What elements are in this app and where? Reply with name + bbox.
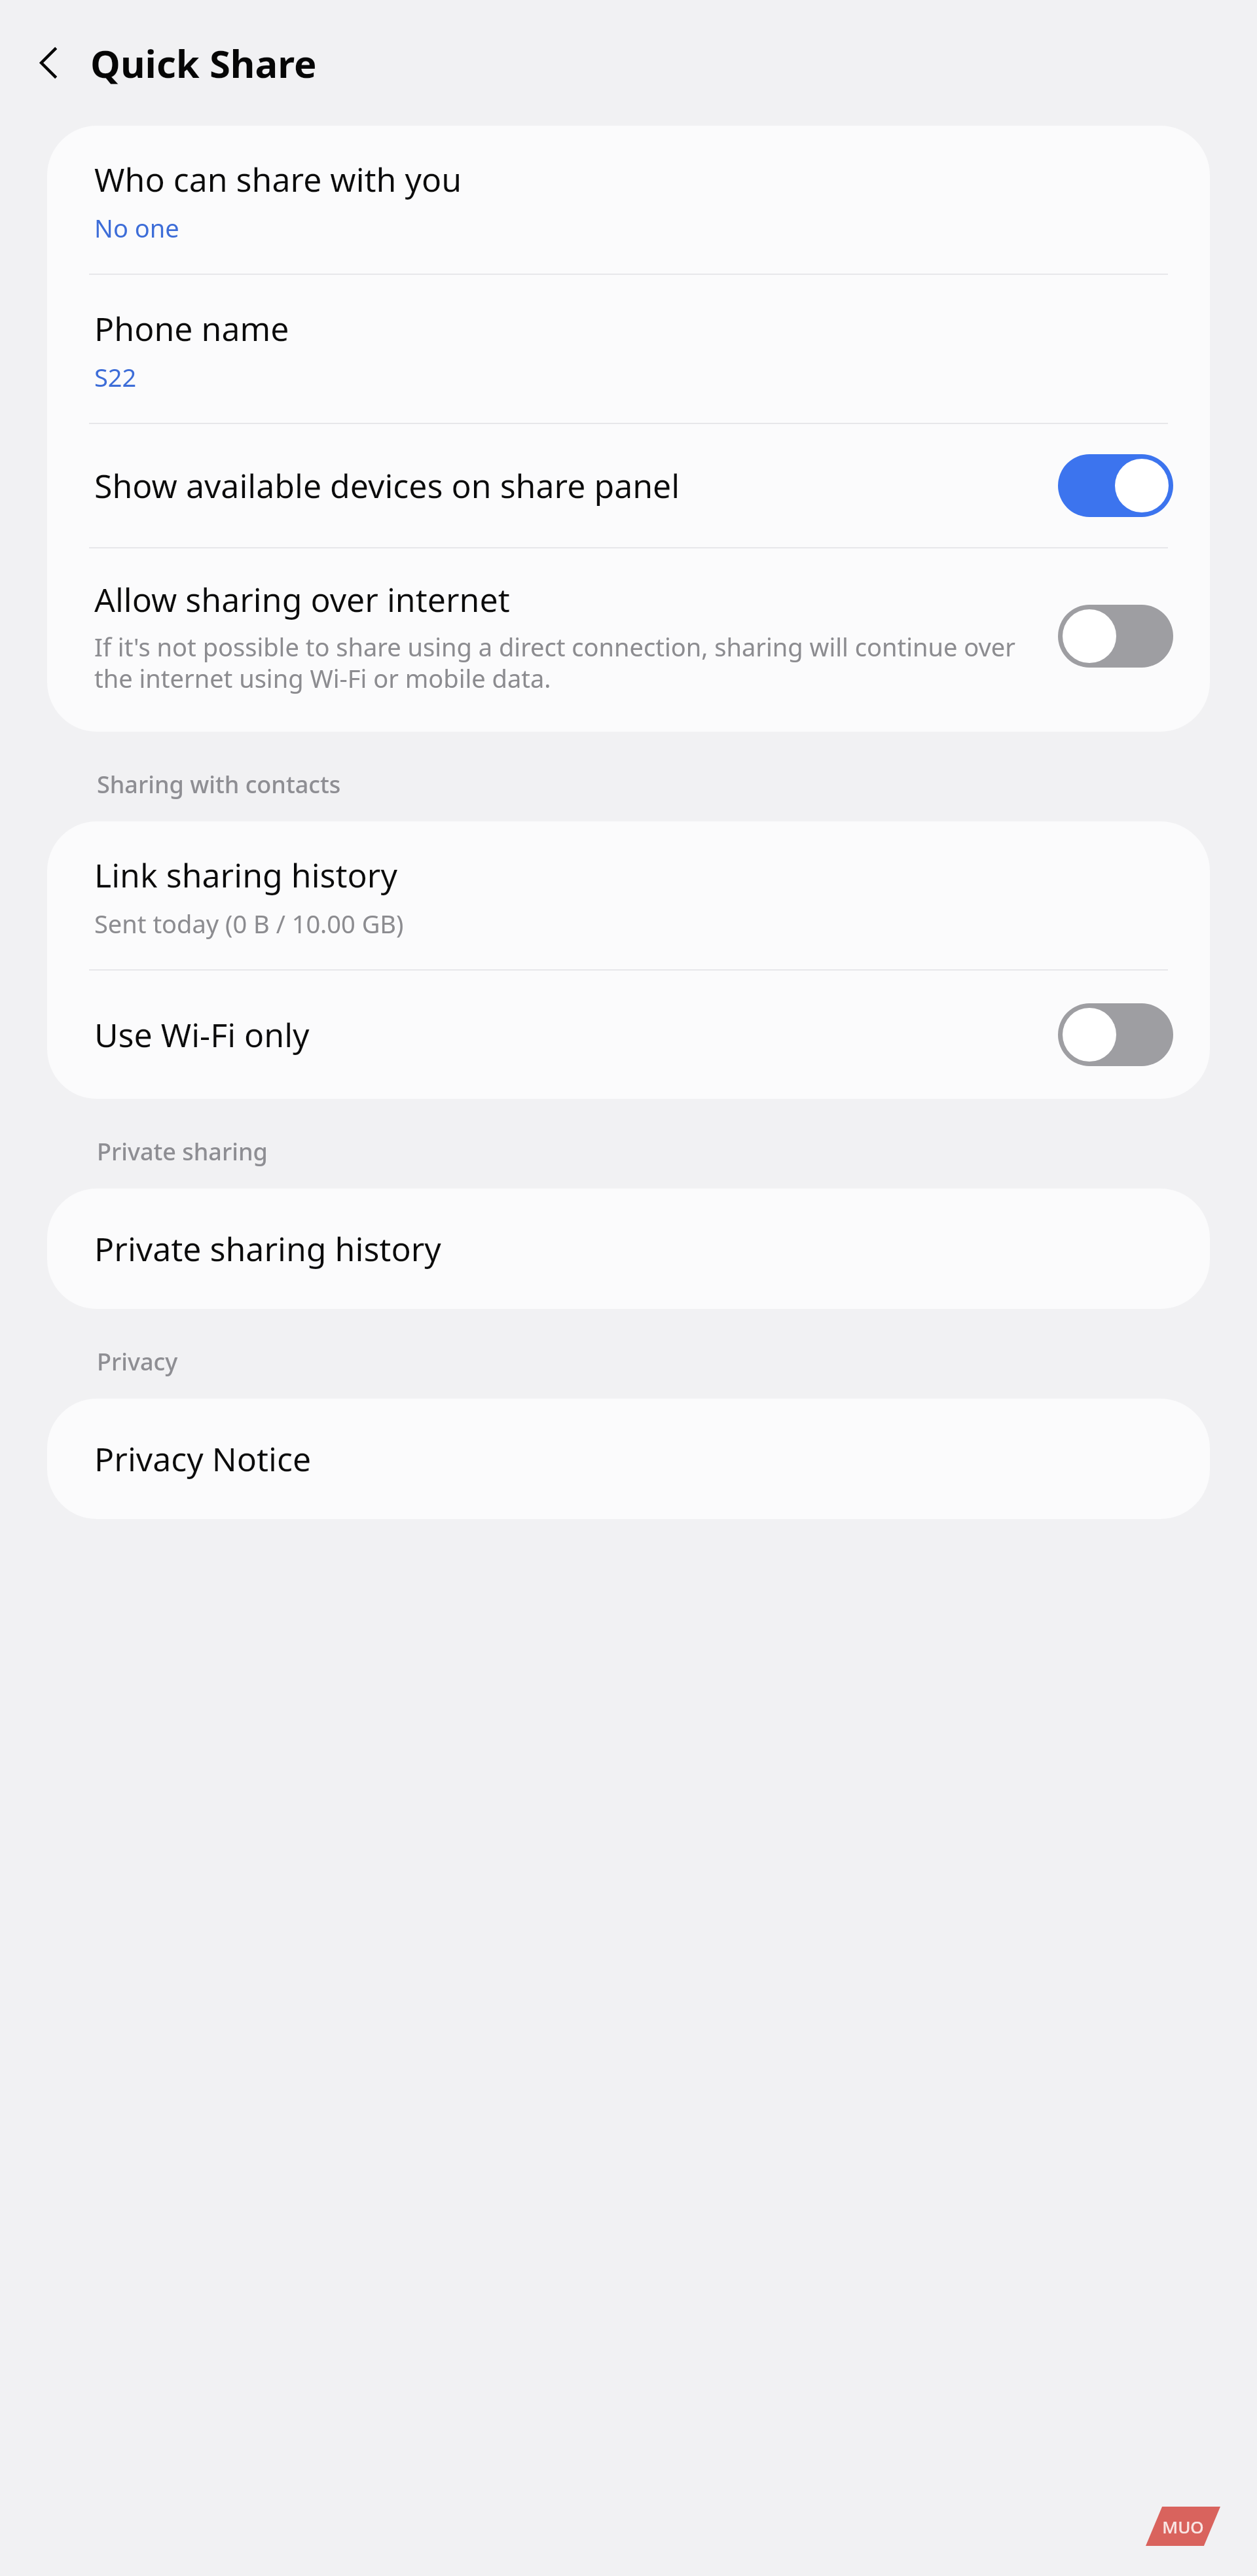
staticText: S22: [94, 360, 137, 394]
staticText: No one: [94, 211, 179, 245]
button[interactable]: Use Wi-Fi only: [47, 971, 1210, 1099]
staticText: Allow sharing over internet: [94, 577, 510, 622]
staticText: Private sharing history: [94, 1226, 441, 1271]
button[interactable]: Back: [18, 31, 81, 94]
staticText: Sharing with contacts: [97, 768, 341, 800]
button[interactable]: Toggle off: [1058, 1003, 1173, 1066]
button[interactable]: Allow sharing over internet: [47, 548, 1210, 732]
staticText: Private sharing: [97, 1136, 268, 1168]
staticText: Use Wi-Fi only: [94, 1012, 1029, 1057]
button[interactable]: Link sharing history: [47, 821, 1210, 969]
button[interactable]: Phone name: [47, 275, 1210, 423]
staticText: Sent today (0 B / 10.00 GB): [94, 906, 404, 940]
staticText: Show available devices on share panel: [94, 463, 1029, 508]
staticText: Quick Share: [90, 37, 317, 89]
staticText: Phone name: [94, 306, 289, 351]
staticText: Privacy: [97, 1346, 178, 1378]
button[interactable]: Toggle off: [1058, 605, 1173, 668]
staticText: Link sharing history: [94, 853, 397, 897]
button[interactable]: Show available devices on share panel: [47, 424, 1210, 547]
staticText: Who can share with you: [94, 157, 462, 202]
button[interactable]: Privacy Notice: [47, 1399, 1210, 1519]
button[interactable]: Private sharing history: [47, 1189, 1210, 1309]
staticText: If it's not possible to share using a di…: [94, 630, 1029, 695]
staticText: Privacy Notice: [94, 1437, 312, 1481]
button[interactable]: Who can share with you: [47, 126, 1210, 274]
button[interactable]: Toggle on: [1058, 454, 1173, 517]
staticText: MUO: [1162, 2515, 1204, 2538]
